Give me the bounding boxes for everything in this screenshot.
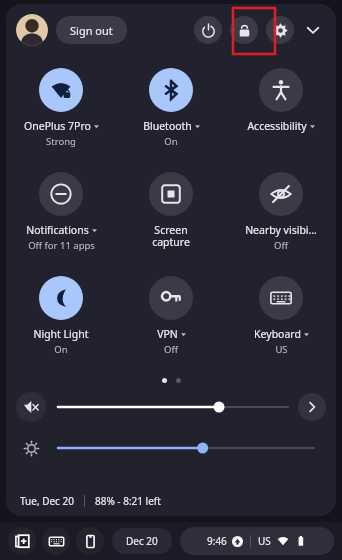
staticText: VPN [157,327,178,341]
staticText: Sign out [70,23,113,38]
staticText: Notifications [26,223,89,237]
button[interactable]: OnePlus 7Pro [6,62,116,166]
staticText: 88% - 8:21 left [95,494,161,508]
staticText: OnePlus 7Pro [24,119,91,133]
button[interactable]: Sign out [56,16,127,44]
button[interactable]: Keyboard [226,270,336,374]
staticText: Off for 11 apps [28,239,95,252]
button[interactable]: Bluetooth [116,62,226,166]
staticText: Screen capture [152,223,190,249]
button[interactable]: Collapse [300,17,326,43]
button[interactable]: Account [16,14,48,46]
button[interactable]: Night Light [6,270,116,374]
button[interactable]: Screen capture [116,166,226,270]
button[interactable]: Brightness [16,433,46,463]
button[interactable]: Audio settings [298,393,326,421]
staticText: Off [274,239,288,252]
staticText: On [54,343,68,356]
button[interactable]: Keyboard [42,527,70,555]
button[interactable]: Dec 20 [112,528,172,554]
button[interactable]: VPN [116,270,226,374]
button[interactable] [58,436,314,460]
button[interactable]: Notifications [6,166,116,270]
staticText: Tue, Dec 20 [20,494,74,508]
staticText: Strong [46,135,76,148]
staticText: 9:46 [207,534,227,548]
button[interactable]: Accessibility [226,62,336,166]
staticText: On [164,135,178,148]
staticText: Keyboard [254,327,301,341]
staticText: US [258,534,271,548]
button[interactable]: Phone hub [76,527,104,555]
button[interactable] [58,395,288,419]
button[interactable]: Nearby visibi… [226,166,336,270]
staticText: Nearby visibi… [245,223,317,237]
staticText: Accessibility [247,119,307,133]
button[interactable]: Settings [266,16,294,44]
staticText: Dec 20 [126,534,158,548]
button[interactable]: Power [194,16,222,44]
button[interactable]: Launcher [8,527,36,555]
staticText: Night Light [33,327,89,341]
staticText: Off [164,343,178,356]
button[interactable]: Lock [230,16,258,44]
button[interactable]: Mute [16,392,46,422]
button[interactable]: 9:46 [180,527,334,555]
staticText: Bluetooth [143,119,192,133]
staticText: US [275,343,288,356]
